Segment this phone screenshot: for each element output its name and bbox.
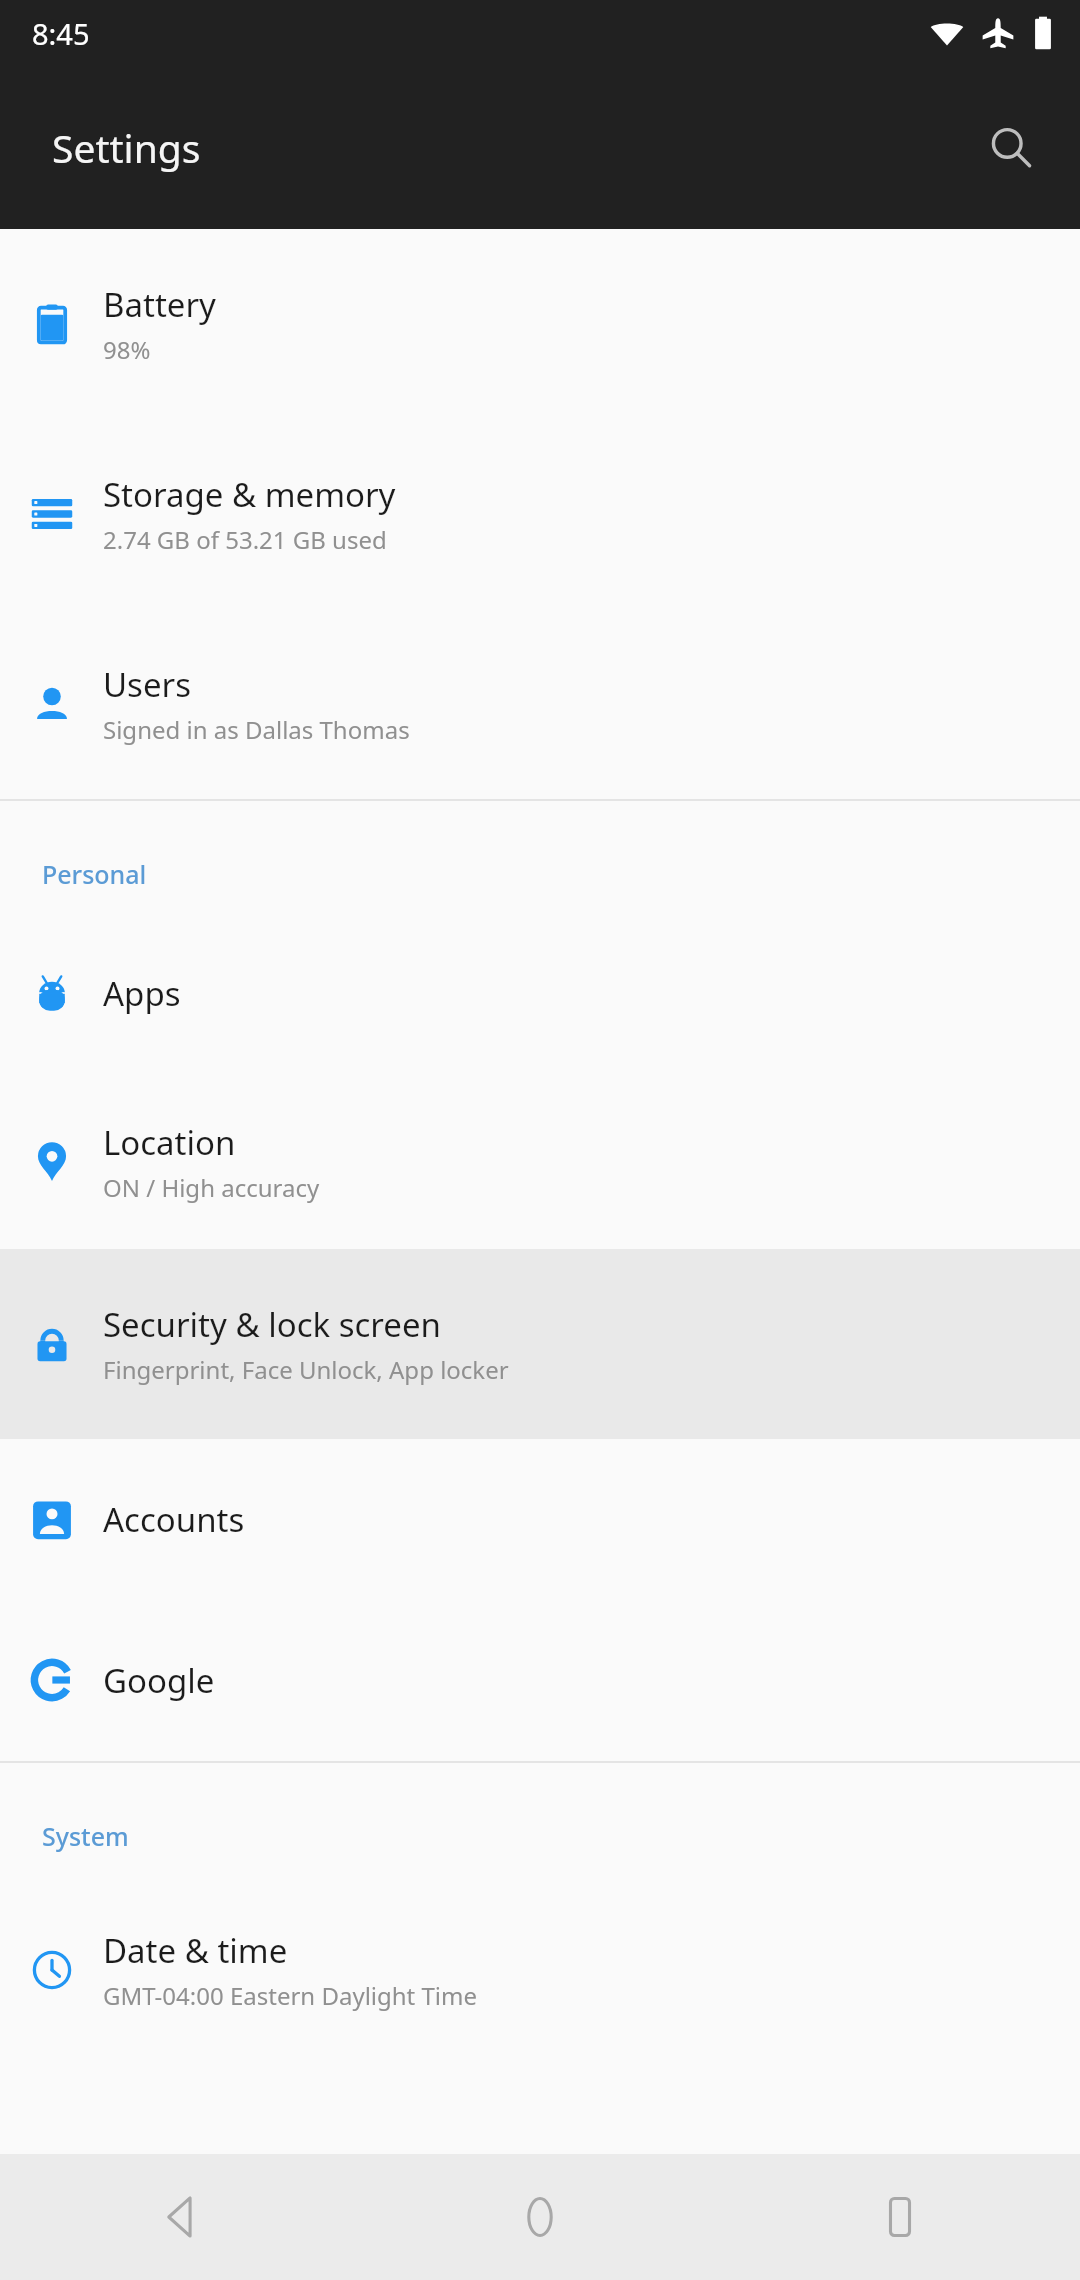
button[interactable]: Apps <box>0 913 1080 1074</box>
button[interactable]: Home <box>360 2154 720 2280</box>
staticText: System <box>42 1819 129 1853</box>
button[interactable]: Storage & memory <box>0 419 1080 609</box>
button[interactable]: Users <box>0 609 1080 799</box>
staticText: Apps <box>103 971 181 1016</box>
staticText: ON / High accuracy <box>103 1171 320 1204</box>
staticText: 98% <box>103 333 151 366</box>
staticText: Signed in as Dallas Thomas <box>103 713 410 746</box>
button[interactable]: Security & lock screen <box>0 1249 1080 1439</box>
staticText: Users <box>103 662 191 707</box>
staticText: Personal <box>42 857 147 891</box>
staticText: Date & time <box>103 1928 288 1973</box>
staticText: Google <box>103 1658 215 1703</box>
staticText: Accounts <box>103 1497 245 1542</box>
staticText: Fingerprint, Face Unlock, App locker <box>103 1353 509 1386</box>
staticText: 8:45 <box>32 14 90 53</box>
staticText: Battery <box>103 282 216 327</box>
button[interactable]: Back <box>0 2154 360 2280</box>
staticText: Settings <box>52 121 201 174</box>
staticText: Storage & memory <box>103 472 396 517</box>
staticText: GMT-04:00 Eastern Daylight Time <box>103 1979 478 2012</box>
button[interactable]: Accounts <box>0 1439 1080 1599</box>
button[interactable]: Google <box>0 1599 1080 1761</box>
button[interactable]: Location <box>0 1074 1080 1249</box>
staticText: 2.74 GB of 53.21 GB used <box>103 523 387 556</box>
button[interactable]: Date & time <box>0 1875 1080 2065</box>
staticText: Security & lock screen <box>103 1302 441 1347</box>
staticText: Location <box>103 1120 236 1165</box>
button[interactable]: Recent apps <box>720 2154 1080 2280</box>
button[interactable]: Search settings <box>964 102 1056 194</box>
button[interactable]: Battery <box>0 229 1080 419</box>
